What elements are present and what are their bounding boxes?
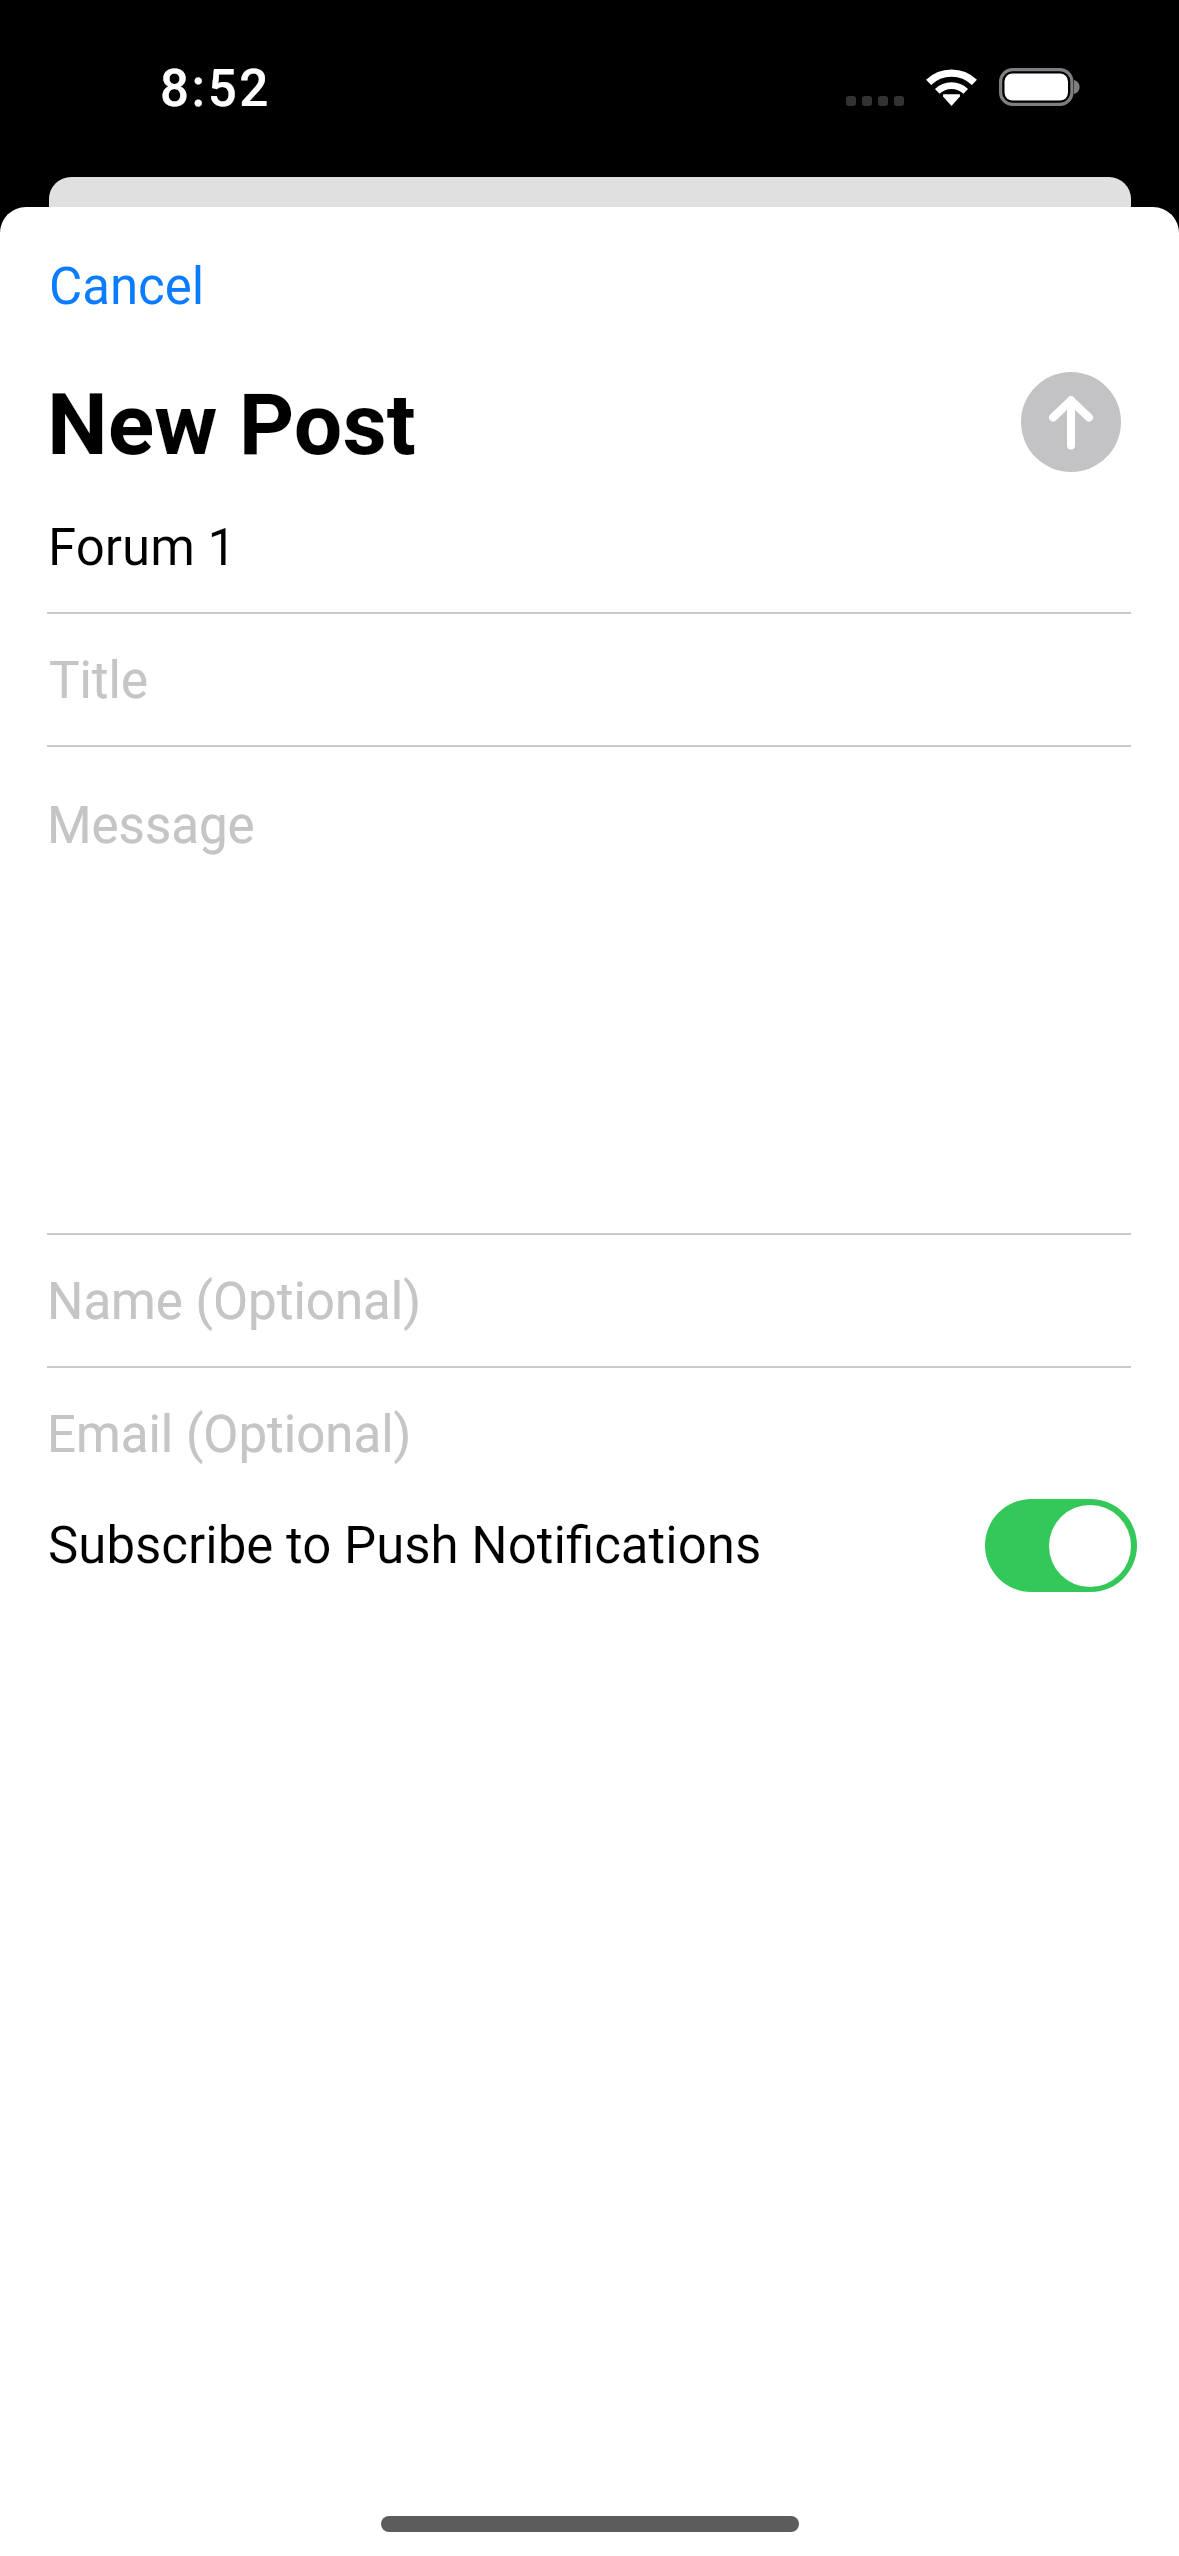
button[interactable]: Subscribe to Push Notifications [0,1490,1179,1600]
button[interactable]: Subscribe to Push Notifications, on [985,1499,1137,1592]
staticText: Name (Optional) [47,1272,421,1332]
button[interactable]: Submit post [1021,372,1121,472]
staticText: Title [49,651,148,711]
staticText: 8:52 [160,59,271,119]
staticText: Forum 1 [48,518,237,578]
button[interactable]: Title [0,614,1179,745]
staticText: Subscribe to Push Notifications [48,1516,762,1576]
button[interactable]: Name (Optional) [0,1235,1179,1366]
staticText: Message [47,796,255,856]
staticText: New Post [47,374,416,475]
button[interactable]: Cancel [49,248,211,320]
staticText: Cancel [49,257,205,317]
button[interactable]: Forum 1 [0,513,1179,612]
button[interactable]: Message [0,747,1179,1233]
staticText: Email (Optional) [47,1405,412,1465]
button[interactable]: Email (Optional) [0,1368,1179,1480]
